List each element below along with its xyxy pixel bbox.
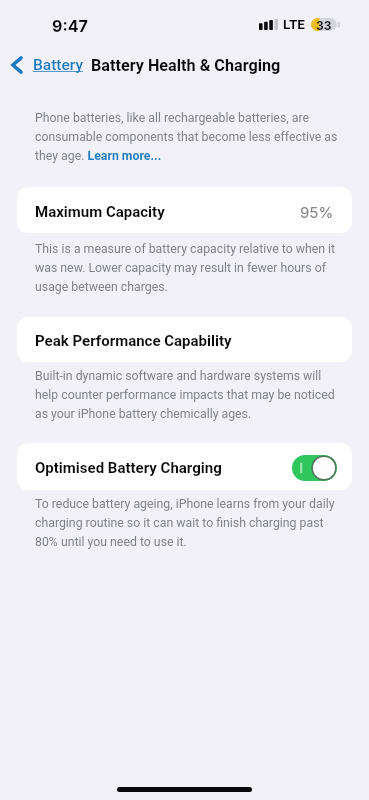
button[interactable]: Battery xyxy=(11,56,83,74)
staticText: This is a measure of battery capacity re… xyxy=(35,242,347,294)
staticText: Peak Performance Capability xyxy=(35,332,232,350)
button[interactable]: Peak Performance Capability xyxy=(17,317,352,362)
staticText: Built-in dynamic software and hardware s… xyxy=(35,369,347,421)
staticText: 33 xyxy=(316,18,332,31)
button[interactable]: Optimised Battery Charging xyxy=(292,455,337,481)
button[interactable]: Optimised Battery Charging xyxy=(17,443,352,490)
staticText: Maximum Capacity xyxy=(35,203,165,221)
button[interactable]: Maximum Capacity xyxy=(17,187,352,233)
staticText: Optimised Battery Charging xyxy=(35,459,222,477)
staticText: To reduce battery ageing, iPhone learns … xyxy=(35,497,347,549)
staticText: LTE xyxy=(283,16,305,32)
staticText: Phone batteries, like all rechargeable b… xyxy=(35,111,343,163)
staticText: 9:47 xyxy=(52,16,88,35)
staticText: Battery xyxy=(33,56,83,74)
staticText: Battery Health & Charging xyxy=(91,56,281,75)
staticText: 95% xyxy=(300,203,334,221)
